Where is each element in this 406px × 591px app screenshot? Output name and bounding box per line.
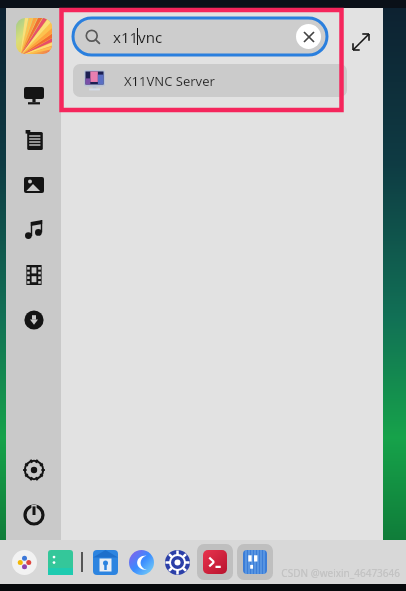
button[interactable]: Expand xyxy=(347,28,375,56)
button[interactable]: Clear xyxy=(296,24,321,49)
staticText: X11VNC Server xyxy=(124,72,215,90)
button[interactable]: Downloads xyxy=(11,297,56,342)
button[interactable]: X11VNC Server xyxy=(73,64,347,97)
button[interactable]: Videos xyxy=(11,252,56,297)
button[interactable]: Documents xyxy=(11,117,56,162)
button[interactable]: Computer xyxy=(11,72,56,117)
button[interactable]: Images xyxy=(11,162,56,207)
staticText: x11vnc xyxy=(113,27,163,47)
staticText: CSDN @weixin_46473646 xyxy=(281,566,400,580)
button[interactable]: Menu xyxy=(6,544,42,580)
button[interactable]: Archive xyxy=(87,544,123,580)
button[interactable]: Power xyxy=(11,492,56,537)
button[interactable]: Music xyxy=(11,207,56,252)
button[interactable]: Browser xyxy=(123,544,159,580)
button[interactable]: x11vnc xyxy=(73,18,327,55)
button[interactable]: Steam xyxy=(159,544,195,580)
button[interactable]: Settings xyxy=(11,447,56,492)
button[interactable]: Files xyxy=(42,544,78,580)
button[interactable]: Notes xyxy=(237,544,273,580)
button[interactable]: Terminal xyxy=(197,544,233,580)
button[interactable]: User xyxy=(16,18,52,54)
